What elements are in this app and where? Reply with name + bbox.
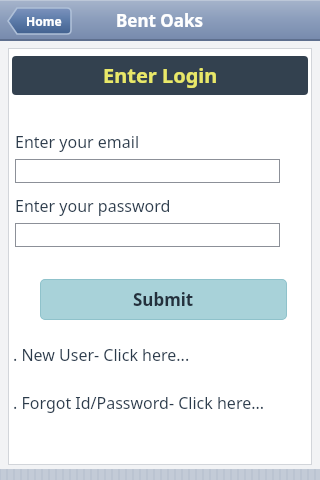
staticText: Enter your password [15, 195, 171, 217]
staticText: Home [26, 13, 62, 29]
button[interactable]: Home [8, 8, 71, 34]
staticText: . New User- Click here... [13, 344, 190, 366]
button[interactable]: . Forgot Id/Password- Click here... [13, 391, 312, 415]
button[interactable]: Enter Login [12, 56, 308, 95]
staticText: . Forgot Id/Password- Click here... [13, 392, 265, 414]
button[interactable] [15, 223, 280, 247]
button[interactable] [15, 159, 280, 183]
staticText: Bent Oaks [116, 9, 204, 32]
staticText: Submit [133, 288, 194, 311]
button[interactable]: Submit [40, 279, 287, 320]
button[interactable]: . New User- Click here... [13, 343, 312, 367]
staticText: Enter Login [103, 62, 218, 89]
staticText: Enter your email [15, 131, 140, 153]
